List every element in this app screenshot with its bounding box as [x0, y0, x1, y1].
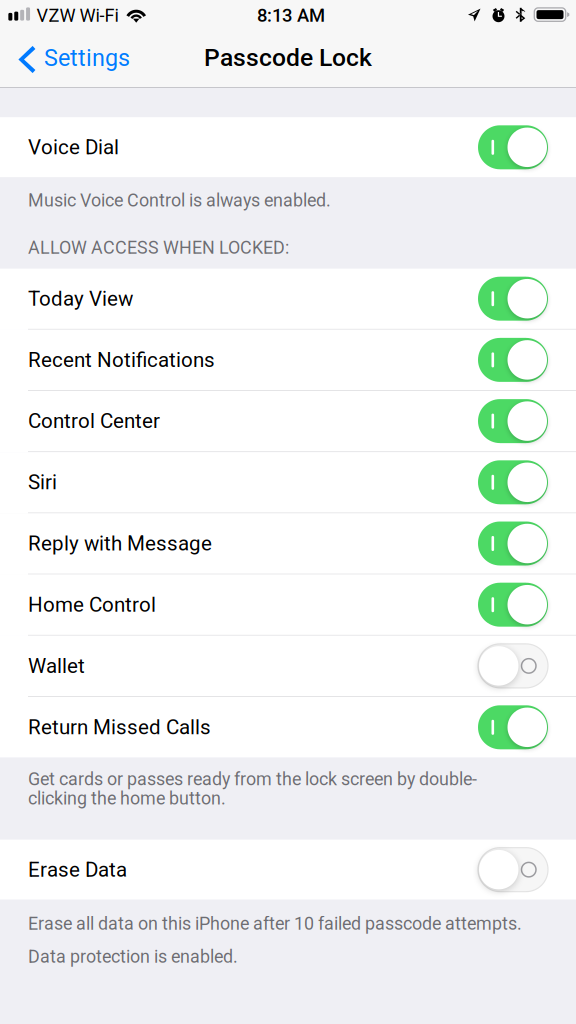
staticText: Settings — [44, 44, 130, 72]
button[interactable]: Voice Dial — [0, 117, 576, 177]
staticText: Return Missed Calls — [28, 715, 211, 739]
staticText: Music Voice Control is always enabled. — [28, 190, 331, 211]
button[interactable]: Wallet — [0, 636, 576, 697]
staticText: VZW Wi-Fi — [36, 5, 118, 26]
staticText: Data protection is enabled. — [28, 946, 238, 967]
button[interactable]: Erase Data — [0, 840, 576, 900]
button[interactable]: Settings — [0, 34, 148, 88]
staticText: Recent Notifications — [28, 348, 215, 372]
staticText: Voice Dial — [28, 135, 119, 159]
staticText: Today View — [28, 287, 133, 311]
button[interactable]: Recent Notifications — [0, 330, 576, 391]
button[interactable]: Home Control — [0, 575, 576, 636]
button[interactable]: Reply with Message — [0, 513, 576, 575]
staticText: Reply with Message — [28, 531, 212, 556]
staticText: Siri — [28, 470, 57, 494]
staticText: clicking the home button. — [28, 788, 226, 809]
button[interactable]: Siri — [0, 452, 576, 513]
staticText: ALLOW ACCESS WHEN LOCKED: — [28, 237, 289, 258]
staticText: Wallet — [28, 654, 85, 678]
staticText: Home Control — [28, 593, 156, 617]
staticText: Erase Data — [28, 858, 127, 882]
button[interactable]: Today View — [0, 269, 576, 330]
staticText: Get cards or passes ready from the lock … — [28, 769, 477, 789]
staticText: Erase all data on this iPhone after 10 f… — [28, 913, 522, 934]
staticText: 8:13 AM — [257, 5, 325, 26]
staticText: Control Center — [28, 409, 160, 433]
staticText: Passcode Lock — [204, 43, 372, 72]
button[interactable]: Return Missed Calls — [0, 697, 576, 758]
button[interactable]: Control Center — [0, 391, 576, 452]
